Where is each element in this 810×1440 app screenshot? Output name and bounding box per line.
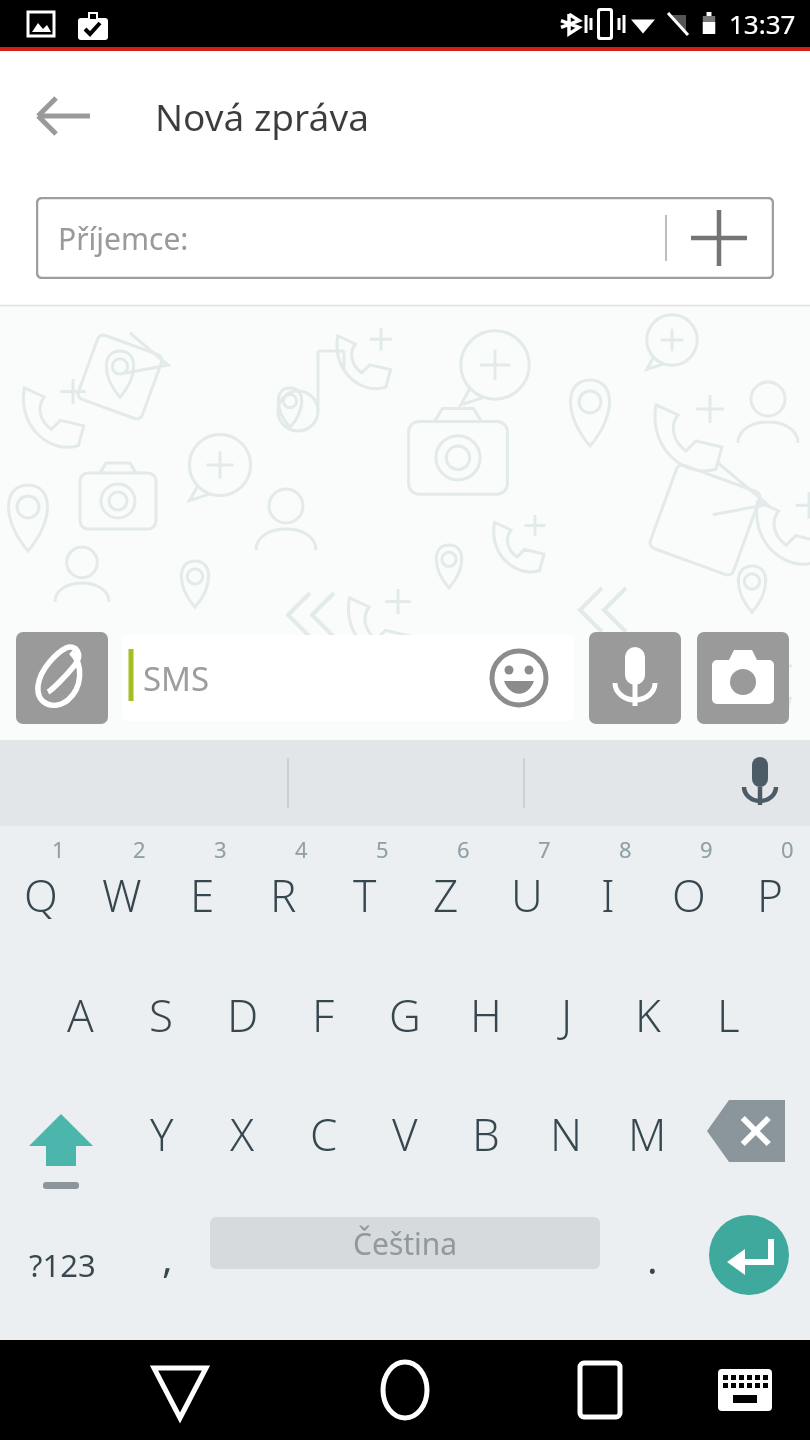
button[interactable]: F <box>283 952 364 1078</box>
staticText: 9 <box>700 834 713 864</box>
staticText: N <box>550 1104 583 1164</box>
staticText: A <box>67 985 94 1045</box>
button[interactable]: Voice message <box>589 632 681 724</box>
staticText: 8 <box>619 834 632 864</box>
staticText: . <box>647 1231 658 1285</box>
staticText: R <box>270 865 297 925</box>
button[interactable]: S <box>121 952 202 1078</box>
staticText: 6 <box>457 834 470 864</box>
staticText: M <box>628 1104 667 1164</box>
button[interactable]: 1 <box>0 826 81 952</box>
staticText: O <box>672 865 706 925</box>
staticText: 0 <box>781 834 794 864</box>
button[interactable]: ?123 <box>0 1204 125 1326</box>
button[interactable]: A <box>40 952 121 1078</box>
button[interactable]: Y <box>121 1078 202 1204</box>
staticText: Nová zpráva <box>155 91 369 141</box>
button[interactable]: D <box>202 952 283 1078</box>
button[interactable]: 8 <box>567 826 648 952</box>
staticText: L <box>717 985 740 1045</box>
staticText: 3 <box>214 834 227 864</box>
staticText: U <box>511 865 543 925</box>
staticText: Q <box>24 865 58 925</box>
staticText: 13:37 <box>729 6 796 41</box>
button[interactable]: 2 <box>81 826 162 952</box>
staticText: Čeština <box>353 1223 458 1264</box>
staticText: C <box>310 1104 338 1164</box>
staticText: Y <box>150 1104 174 1164</box>
staticText: W <box>102 865 142 925</box>
button[interactable]: N <box>526 1078 607 1204</box>
button[interactable]: M <box>607 1078 688 1204</box>
button[interactable]: Čeština <box>210 1217 600 1269</box>
button[interactable]: Home <box>365 1350 445 1430</box>
button[interactable]: Shift <box>0 1078 121 1204</box>
staticText: 5 <box>376 834 389 864</box>
button[interactable]: Voice input <box>732 755 788 811</box>
staticText: V <box>392 1104 418 1164</box>
button[interactable]: Back <box>140 1350 220 1430</box>
staticText: , <box>162 1230 173 1284</box>
staticText: D <box>227 985 259 1045</box>
staticText: ?123 <box>29 1244 96 1286</box>
staticText: K <box>635 985 661 1045</box>
staticText: SMS <box>143 656 210 701</box>
staticText: Z <box>433 865 459 925</box>
button[interactable]: K <box>607 952 688 1078</box>
button[interactable]: , <box>125 1204 210 1326</box>
staticText: J <box>561 985 573 1045</box>
button[interactable]: B <box>445 1078 526 1204</box>
staticText: 4 <box>295 834 308 864</box>
staticText: G <box>389 985 421 1045</box>
staticText: P <box>757 865 783 925</box>
staticText: F <box>312 985 335 1045</box>
button[interactable]: Hide keyboard <box>710 1355 780 1425</box>
button[interactable]: C <box>283 1078 364 1204</box>
staticText: B <box>472 1104 500 1164</box>
button[interactable]: 6 <box>405 826 486 952</box>
button[interactable]: V <box>364 1078 445 1204</box>
button[interactable]: J <box>526 952 607 1078</box>
staticText: E <box>190 865 215 925</box>
button[interactable]: 7 <box>486 826 567 952</box>
button[interactable]: H <box>445 952 526 1078</box>
staticText: H <box>470 985 502 1045</box>
button[interactable]: 4 <box>243 826 324 952</box>
staticText: X <box>230 1104 255 1164</box>
button[interactable]: SMS <box>122 635 574 721</box>
button[interactable]: Příjemce: <box>36 197 774 279</box>
button[interactable]: X <box>202 1078 283 1204</box>
button[interactable]: Camera <box>697 632 789 724</box>
staticText: T <box>353 865 377 925</box>
button[interactable]: Enter <box>709 1215 789 1295</box>
button[interactable]: . <box>610 1204 695 1326</box>
button[interactable]: Attach <box>16 632 108 724</box>
staticText: 2 <box>133 834 146 864</box>
staticText: Příjemce: <box>58 218 189 259</box>
button[interactable]: 9 <box>648 826 729 952</box>
staticText: 7 <box>538 834 551 864</box>
button[interactable]: 3 <box>162 826 243 952</box>
button[interactable]: 5 <box>324 826 405 952</box>
staticText: I <box>601 865 615 925</box>
button[interactable]: G <box>364 952 445 1078</box>
button[interactable]: 0 <box>729 826 810 952</box>
button[interactable]: Recent apps <box>560 1350 640 1430</box>
staticText: 1 <box>52 834 65 864</box>
staticText: S <box>149 985 174 1045</box>
button[interactable]: L <box>688 952 769 1078</box>
button[interactable]: Back <box>28 80 100 152</box>
button[interactable]: Backspace <box>688 1078 810 1204</box>
